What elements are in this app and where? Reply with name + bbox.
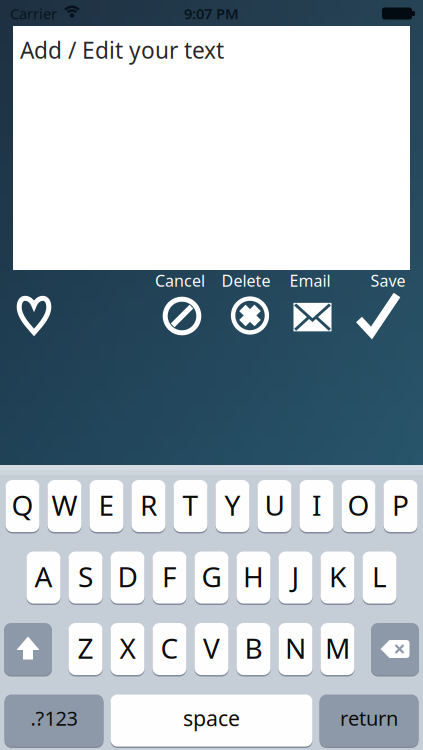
button[interactable]: E (89, 480, 123, 534)
staticText: P (392, 486, 409, 523)
staticText: C (160, 629, 178, 666)
button[interactable]: J (278, 551, 312, 605)
button[interactable]: Add / Edit your text (13, 26, 410, 270)
button[interactable]: S (68, 551, 102, 605)
staticText: 9:07 PM (184, 4, 239, 23)
button[interactable]: N (278, 623, 312, 677)
button[interactable]: A (26, 551, 60, 605)
staticText: A (34, 558, 52, 595)
staticText: E (98, 486, 114, 523)
button[interactable]: W (47, 480, 81, 534)
button[interactable]: T (173, 480, 207, 534)
button[interactable]: V (194, 623, 228, 677)
button[interactable] (224, 289, 276, 341)
button[interactable]: F (152, 551, 186, 605)
staticText: space (183, 704, 240, 732)
button[interactable] (371, 623, 419, 677)
button[interactable]: K (320, 551, 354, 605)
button[interactable]: Z (68, 623, 102, 677)
staticText: K (329, 558, 346, 595)
button[interactable] (8, 289, 60, 341)
button[interactable]: return (319, 694, 418, 748)
staticText: X (119, 629, 135, 666)
button[interactable]: M (320, 623, 354, 677)
staticText: F (162, 558, 177, 595)
button[interactable]: I (299, 480, 333, 534)
staticText: .?123 (30, 705, 77, 731)
staticText: Z (77, 629, 93, 666)
staticText: Add / Edit your text (20, 35, 224, 65)
staticText: Carrier (10, 4, 57, 23)
staticText: W (51, 486, 77, 523)
button[interactable]: Q (5, 480, 39, 534)
staticText: H (243, 558, 264, 595)
button[interactable]: O (341, 480, 375, 534)
staticText: Email (289, 270, 330, 291)
button[interactable]: B (236, 623, 270, 677)
button[interactable]: G (194, 551, 228, 605)
button[interactable]: U (257, 480, 291, 534)
button[interactable]: H (236, 551, 270, 605)
staticText: D (117, 558, 137, 595)
staticText: M (325, 629, 350, 666)
staticText: U (264, 486, 284, 523)
staticText: R (140, 486, 157, 523)
button[interactable] (156, 290, 208, 342)
staticText: Q (11, 486, 33, 523)
staticText: Delete (221, 270, 270, 291)
button[interactable]: R (131, 480, 165, 534)
staticText: O (347, 486, 369, 523)
staticText: Y (224, 486, 240, 523)
staticText: T (182, 486, 198, 523)
button[interactable] (352, 289, 404, 341)
staticText: S (78, 558, 93, 595)
button[interactable]: D (110, 551, 144, 605)
staticText: Cancel (155, 270, 205, 291)
button[interactable]: P (383, 480, 417, 534)
button[interactable]: L (362, 551, 396, 605)
staticText: J (291, 558, 299, 595)
button[interactable]: space (110, 694, 312, 748)
staticText: G (201, 558, 221, 595)
button[interactable]: .?123 (4, 694, 103, 748)
staticText: B (244, 629, 262, 666)
button[interactable]: C (152, 623, 186, 677)
staticText: L (372, 558, 387, 595)
button[interactable] (286, 290, 338, 342)
staticText: N (285, 629, 306, 666)
button[interactable] (4, 623, 52, 677)
staticText: I (312, 486, 321, 523)
staticText: V (203, 629, 220, 666)
staticText: Save (370, 270, 405, 291)
button[interactable]: Y (215, 480, 249, 534)
staticText: return (340, 705, 398, 731)
button[interactable]: X (110, 623, 144, 677)
